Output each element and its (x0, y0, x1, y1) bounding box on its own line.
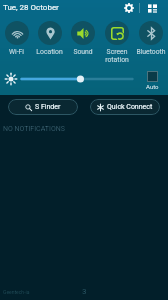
staticText: Tue, 28 October (3, 3, 59, 12)
staticText: Quick Connect (107, 103, 153, 111)
button[interactable]: S Finder (8, 99, 78, 115)
staticText: Wi-Fi (9, 48, 24, 56)
staticText: Geentech-ia (3, 289, 30, 295)
staticText: Auto (146, 83, 159, 90)
staticText: NO NOTIFICATIONS (3, 125, 65, 133)
staticText: Bluetooth (136, 48, 166, 56)
button[interactable]: Sound (66, 21, 100, 65)
button[interactable]: Auto (140, 71, 164, 90)
button[interactable]: Screen rotation (100, 21, 134, 65)
button[interactable]: Settings (121, 0, 137, 16)
button[interactable]: Wi-Fi (0, 21, 33, 65)
button[interactable]: Quick Connect (90, 99, 160, 115)
button[interactable]: Brightness (20, 74, 134, 84)
button[interactable]: Edit quick settings (144, 0, 160, 16)
staticText: Screen rotation (105, 48, 129, 64)
staticText: Sound (73, 48, 93, 56)
staticText: S Finder (35, 103, 61, 111)
staticText: Location (36, 48, 63, 56)
button[interactable]: Location (33, 21, 66, 65)
button[interactable]: Bluetooth (134, 21, 168, 65)
staticText: 3 (82, 287, 87, 296)
